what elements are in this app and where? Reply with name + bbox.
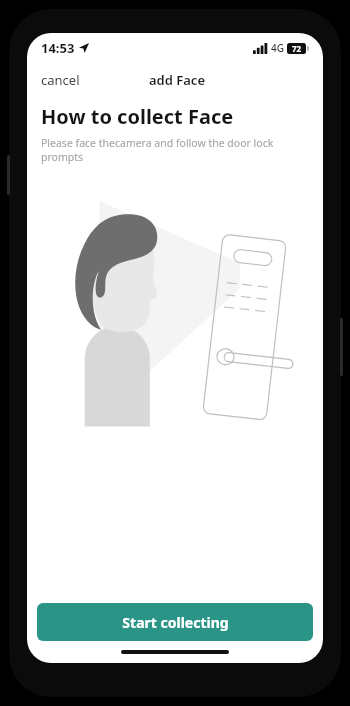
staticText: 72: [292, 43, 302, 54]
button[interactable]: cancel: [27, 65, 90, 95]
staticText: How to collect Face: [41, 103, 234, 130]
staticText: add Face: [149, 71, 205, 89]
button[interactable]: Start collecting: [37, 603, 313, 641]
staticText: Start collecting: [122, 613, 229, 632]
staticText: 14:53: [41, 39, 75, 57]
staticText: cancel: [41, 71, 80, 89]
staticText: Please face thecamera and follow the doo…: [41, 136, 309, 164]
staticText: 4G: [271, 41, 284, 55]
